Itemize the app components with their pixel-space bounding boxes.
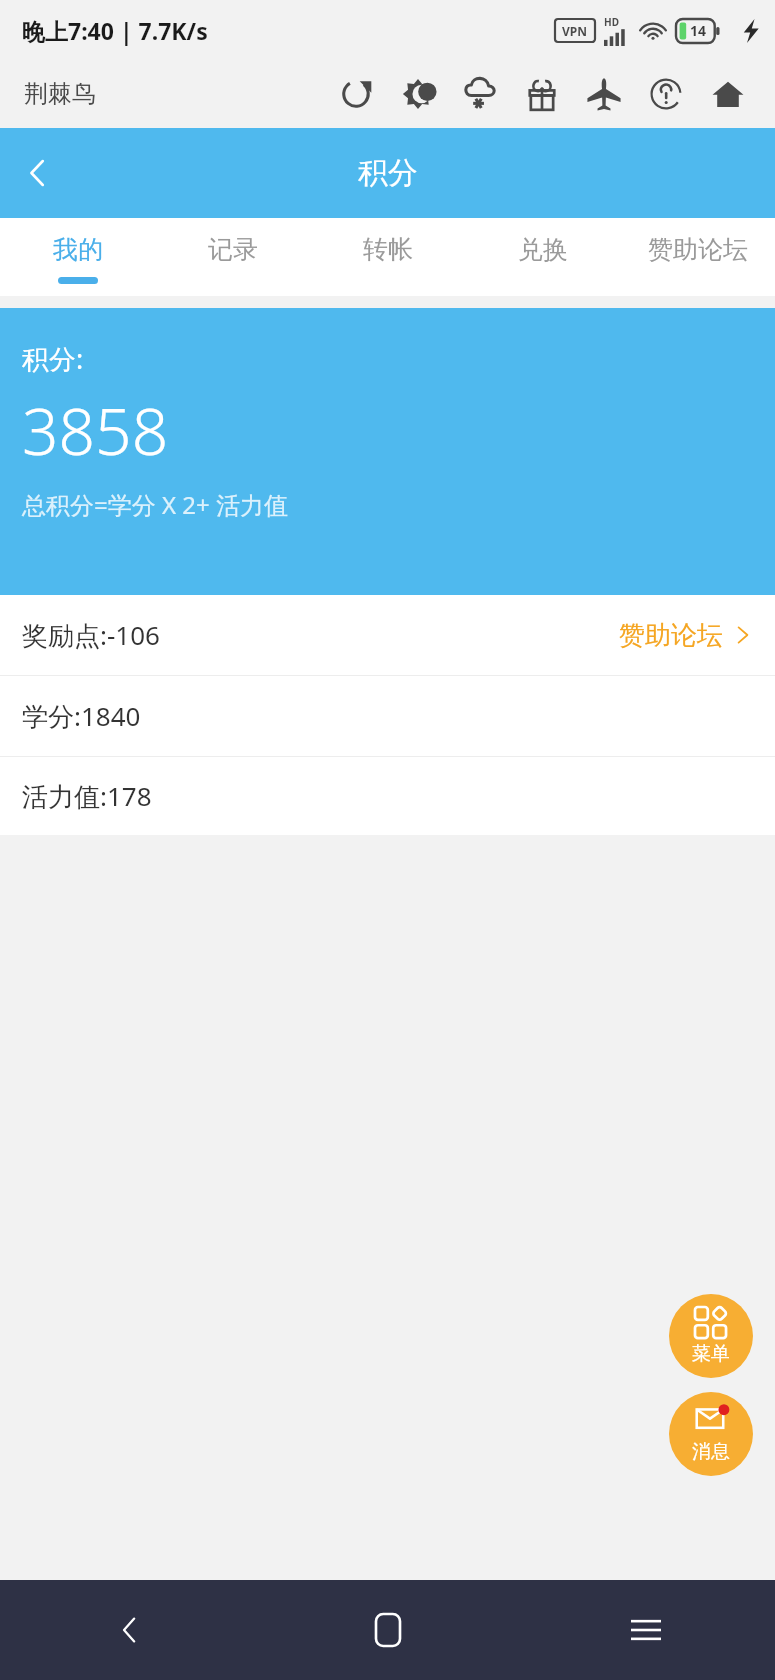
button[interactable]: Gift <box>511 63 573 125</box>
button[interactable]: Refresh <box>325 63 387 125</box>
button[interactable]: Airplane mode <box>573 63 635 125</box>
button[interactable]: 记录 <box>155 218 310 296</box>
staticText: 晚上7:40 | 7.7K/s <box>22 15 208 46</box>
staticText: 总积分=学分 X 2+ 活力值 <box>22 488 288 521</box>
button[interactable]: Home <box>697 63 759 125</box>
staticText: 积分: <box>22 340 84 377</box>
button[interactable]: Weather <box>449 63 511 125</box>
button[interactable]: 消息 <box>669 1392 753 1476</box>
button[interactable]: Back <box>0 1580 259 1680</box>
staticText: 我的 <box>53 234 103 265</box>
button[interactable]: Help <box>635 63 697 125</box>
staticText: 学分:1840 <box>22 698 141 734</box>
button[interactable]: Night mode <box>387 63 449 125</box>
staticText: 荆棘鸟 <box>24 79 96 109</box>
button[interactable]: 学分:1840 <box>0 676 775 756</box>
staticText: 积分 <box>358 154 418 192</box>
button[interactable]: 菜单 <box>669 1294 753 1378</box>
button[interactable]: Home <box>259 1580 517 1680</box>
button[interactable]: 转帐 <box>310 218 465 296</box>
button[interactable]: Back <box>0 135 76 211</box>
staticText: 14 <box>690 21 707 40</box>
button[interactable]: 我的 <box>0 218 155 296</box>
staticText: 赞助论坛 <box>619 619 723 652</box>
button[interactable]: 赞助论坛 <box>620 218 775 296</box>
staticText: 记录 <box>208 234 258 265</box>
staticText: 活力值:178 <box>22 778 152 814</box>
staticText: 赞助论坛 <box>648 234 748 265</box>
button[interactable]: Recents <box>517 1580 775 1680</box>
button[interactable]: 兑换 <box>465 218 620 296</box>
button[interactable]: 活力值:178 <box>0 757 775 835</box>
staticText: VPN <box>562 23 588 39</box>
staticText: HD <box>604 15 619 29</box>
staticText: 奖励点:-106 <box>22 617 160 653</box>
staticText: 菜单 <box>692 1342 730 1366</box>
staticText: 兑换 <box>518 234 568 265</box>
staticText: 消息 <box>692 1440 730 1464</box>
staticText: 3858 <box>22 387 169 474</box>
button[interactable]: 奖励点:-106 <box>0 595 775 675</box>
staticText: 转帐 <box>363 234 413 265</box>
